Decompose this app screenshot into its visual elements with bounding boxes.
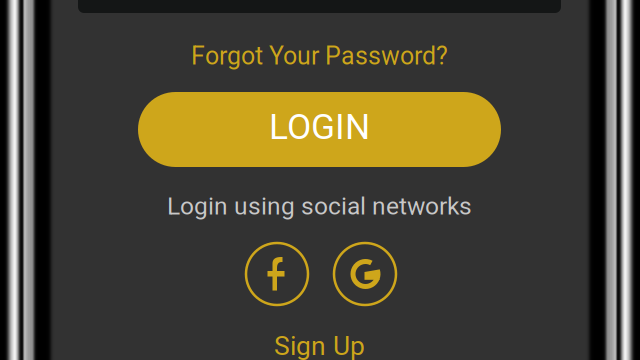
button[interactable]: Sign Up [274,330,365,360]
button[interactable]: Log in with Facebook [246,243,308,305]
staticText: Forgot Your Password? [191,41,448,71]
button[interactable]: LOGIN [138,92,501,167]
staticText: Login using social networks [167,192,472,220]
staticText: LOGIN [269,106,370,148]
button[interactable]: Log in with Google [334,243,396,305]
staticText: Sign Up [274,330,365,360]
button[interactable]: Forgot Your Password? [191,41,448,71]
